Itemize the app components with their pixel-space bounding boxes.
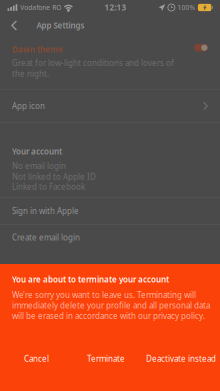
button[interactable]: Cancel xyxy=(19,348,54,369)
staticText: Sign in with Apple xyxy=(12,206,79,216)
staticText: App icon xyxy=(12,101,45,111)
staticText: Not linked to Apple ID xyxy=(12,171,96,182)
staticText: App Settings xyxy=(37,20,85,31)
staticText: Great for low-light conditions and lover… xyxy=(12,58,174,79)
staticText: You are about to terminate your account xyxy=(12,274,169,285)
staticText: We're sorry you want to leave us. Termin… xyxy=(12,290,196,300)
staticText: Create email login xyxy=(12,232,80,243)
button[interactable]: App icon xyxy=(0,89,220,122)
button[interactable]: Terminate xyxy=(82,348,130,369)
staticText: immediately delete your profile and all … xyxy=(12,300,210,311)
staticText: Deactivate instead xyxy=(146,353,216,364)
button[interactable]: Dawn theme xyxy=(194,44,208,51)
staticText: Linked to Facebook xyxy=(12,181,85,192)
staticText: 100% xyxy=(177,3,195,12)
staticText: will be erased in accordance with our pr… xyxy=(12,311,205,321)
button[interactable]: Deactivate instead xyxy=(141,348,220,369)
button[interactable]: Back xyxy=(4,15,25,36)
staticText: No email login xyxy=(12,161,66,171)
button[interactable]: Create email login xyxy=(0,224,220,250)
staticText: Dawn theme xyxy=(12,44,63,55)
staticText: Cancel xyxy=(24,353,49,364)
staticText: 12:13 xyxy=(105,2,127,13)
staticText: Your account xyxy=(12,146,62,157)
button[interactable]: Sign in with Apple xyxy=(0,198,220,224)
staticText: Terminate xyxy=(87,353,125,364)
staticText: Vodafone RO xyxy=(20,3,61,12)
